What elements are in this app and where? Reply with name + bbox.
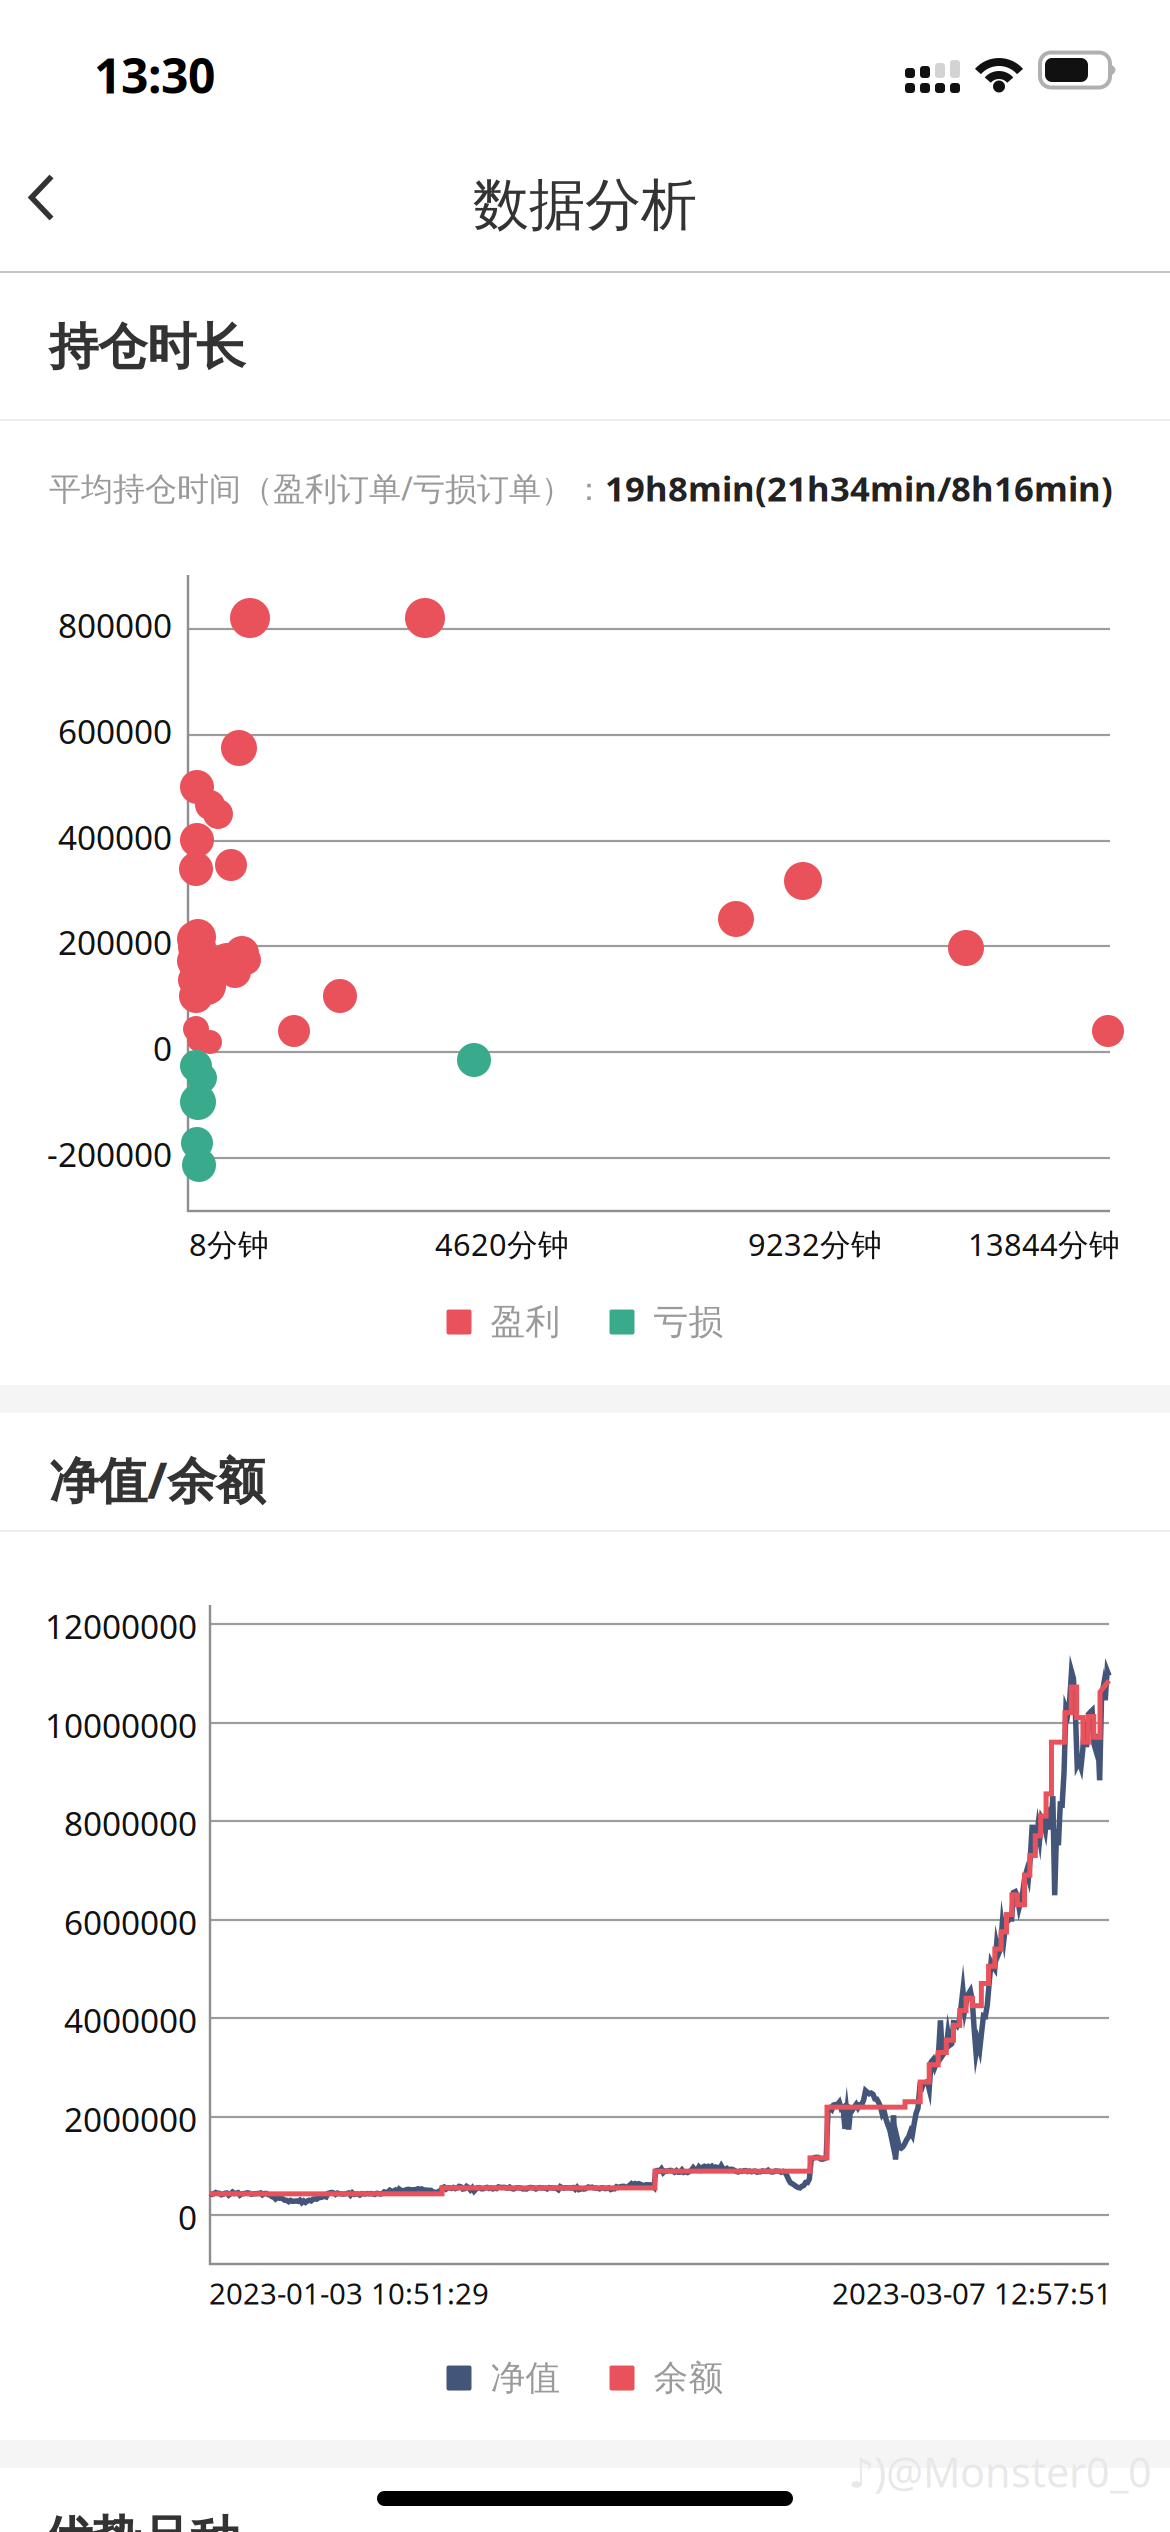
button[interactable]: 亏损 [609,1301,723,1343]
staticText: 亏损 [653,1301,723,1343]
staticText: 优势品种 [43,2510,239,2532]
staticText: 2023-03-07 12:57:51 [832,2273,1112,2312]
staticText: 12000000 [45,1604,197,1648]
staticText: 数据分析 [473,171,697,239]
staticText: 净值/余额 [49,1447,265,1512]
button[interactable]: 优势品种 [0,2468,1121,2532]
staticText: 持仓时长 [49,317,245,377]
button[interactable]: 余额 [609,2357,723,2399]
staticText: 平均持仓时间（盈利订单/亏损订单）： [49,467,605,509]
staticText: 200000 [58,920,172,964]
staticText: 0 [153,1026,172,1070]
staticText: 13844分钟 [968,1224,1120,1264]
button[interactable]: 盈利 [446,1301,560,1343]
staticText: 10000000 [45,1703,197,1747]
staticText: 0 [178,2195,197,2239]
staticText: 净值 [490,2357,560,2399]
staticText: 8000000 [64,1801,197,1845]
staticText: 2023-01-03 10:51:29 [209,2273,489,2312]
staticText: 19h8min(21h34min/8h16min) [605,465,1113,511]
staticText: 13:30 [94,43,215,107]
staticText: 6000000 [64,1900,197,1944]
button[interactable]: 净值 [446,2357,560,2399]
staticText: 4000000 [64,1998,197,2042]
staticText: 9232分钟 [748,1224,882,1264]
button[interactable]: 持仓时长 [0,275,1121,419]
staticText: 4620分钟 [435,1224,569,1264]
staticText: 余额 [653,2357,723,2399]
button[interactable]: Back [0,150,140,246]
staticText: 400000 [58,815,172,859]
staticText: ♪)@Monster0_0 [848,2444,1152,2499]
staticText: 600000 [58,709,172,753]
button[interactable]: 净值/余额 [0,1413,1121,1530]
staticText: 2000000 [64,2097,197,2141]
staticText: 800000 [58,603,172,647]
staticText: 8分钟 [189,1224,269,1264]
staticText: -200000 [47,1132,172,1176]
staticText: 盈利 [490,1301,560,1343]
